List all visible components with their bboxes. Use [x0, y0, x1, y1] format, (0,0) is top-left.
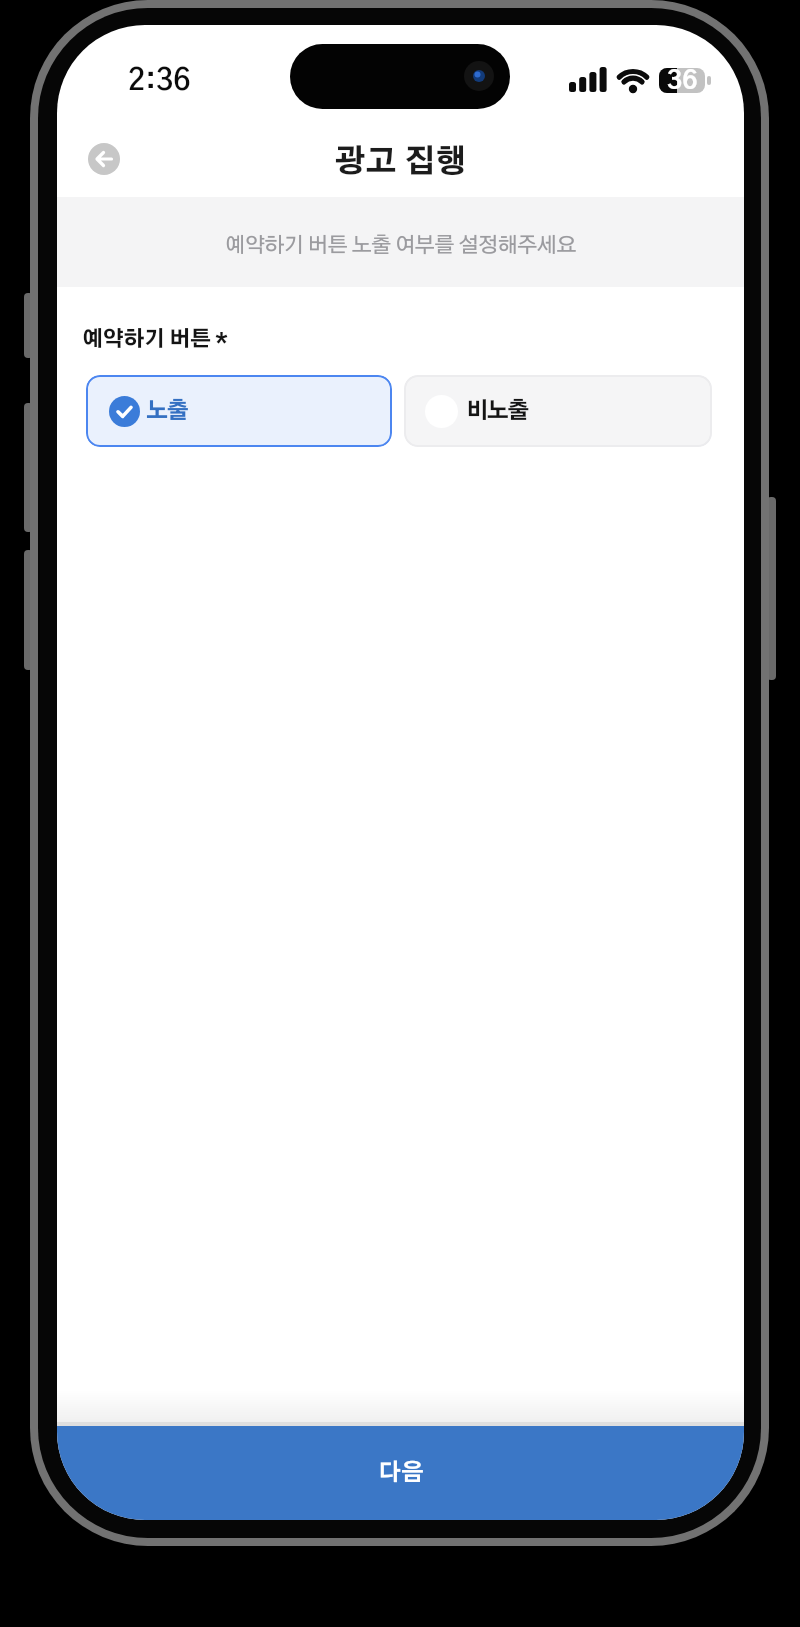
staticText: 광고 집행 [334, 147, 467, 178]
staticText: 36 [667, 68, 698, 93]
staticText: 다음 [378, 1462, 424, 1485]
staticText: 노출 [146, 400, 188, 422]
button[interactable] [88, 143, 120, 175]
staticText: 2:36 [128, 66, 191, 96]
button[interactable]: 다음 [57, 1426, 744, 1520]
staticText: 예약하기 버튼 * [82, 329, 228, 350]
button[interactable]: 노출 [86, 375, 392, 447]
button[interactable]: 비노출 [404, 375, 712, 447]
staticText: 비노출 [466, 400, 529, 422]
staticText: 예약하기 버튼 노출 여부를 설정해주세요 [225, 235, 576, 256]
